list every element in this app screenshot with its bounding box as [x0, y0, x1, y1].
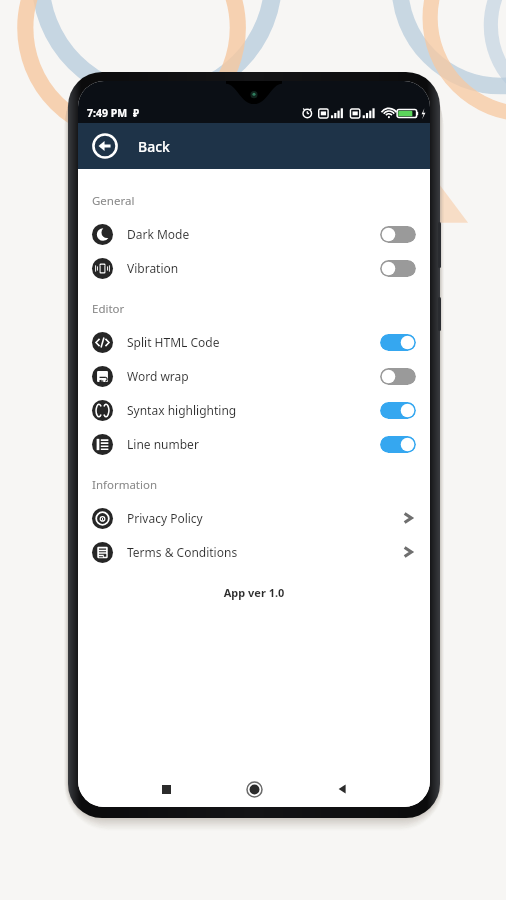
button[interactable]: Syntax highlighting [78, 393, 430, 427]
button[interactable]: On [380, 436, 416, 453]
button[interactable]: Off [380, 226, 416, 243]
button[interactable]: Privacy Policy [78, 501, 430, 535]
button[interactable]: Vibration [78, 251, 430, 285]
staticText: Privacy Policy [127, 510, 203, 526]
button[interactable]: Split HTML Code [78, 325, 430, 359]
staticText: Dark Mode [127, 226, 190, 242]
staticText: Editor [92, 301, 125, 317]
button[interactable]: On [380, 334, 416, 351]
staticText: General [92, 193, 135, 209]
button[interactable]: Back [327, 774, 357, 804]
button[interactable]: Home [239, 774, 269, 804]
staticText: Information [92, 477, 158, 493]
staticText: Terms & Conditions [127, 544, 238, 560]
staticText: App ver 1.0 [78, 585, 430, 600]
staticText: Line number [127, 436, 199, 452]
staticText: Syntax highlighting [127, 402, 237, 418]
staticText: ₽ [133, 106, 139, 120]
button[interactable]: Dark Mode [78, 217, 430, 251]
button[interactable]: Terms & Conditions [78, 535, 430, 569]
staticText: Back [138, 137, 170, 156]
button[interactable]: On [380, 402, 416, 419]
staticText: Vibration [127, 260, 179, 276]
button[interactable]: Off [380, 260, 416, 277]
staticText: 7:49 PM [87, 106, 128, 120]
staticText: Split HTML Code [127, 334, 220, 350]
button[interactable]: Off [380, 368, 416, 385]
button[interactable]: Line number [78, 427, 430, 461]
button[interactable]: Back [90, 131, 120, 161]
staticText: Word wrap [127, 368, 189, 384]
button[interactable]: Word wrap [78, 359, 430, 393]
button[interactable]: Recents [151, 774, 181, 804]
